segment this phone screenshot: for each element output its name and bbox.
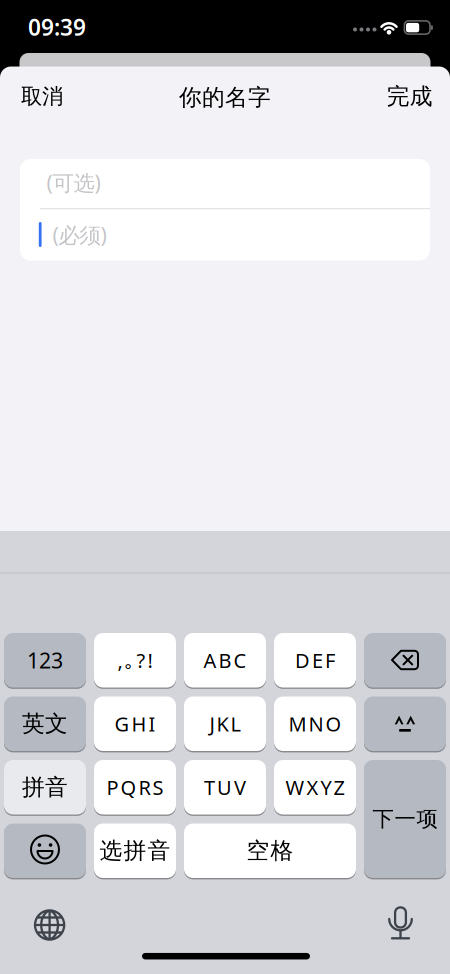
button[interactable]: 完成 [387,83,433,110]
staticText: J K L [209,710,240,737]
staticText: 下 一 项 [372,806,437,832]
button[interactable]: Emoji [4,823,86,878]
staticText: 选 拼 音 [99,837,170,865]
staticText: D E F [295,647,335,674]
staticText: G H I [114,710,155,737]
button[interactable]: A B C [184,633,266,687]
staticText: M N O [288,710,341,737]
button[interactable]: 空 格 [184,823,356,878]
button[interactable]: G H I [94,696,176,751]
button[interactable]: Dictation [378,901,422,945]
staticText: , ｡ ? ! [117,647,152,674]
staticText: 英文 [22,710,68,738]
button[interactable]: , ｡ ? ! [94,633,176,687]
button[interactable]: 拼音 [4,760,86,814]
button[interactable]: Delete [364,633,446,687]
button[interactable]: 取消 [21,83,63,110]
button[interactable]: J K L [184,696,266,751]
button[interactable]: P Q R S [94,760,176,814]
staticText: P Q R S [106,774,163,801]
button[interactable]: Next keyboard [28,903,72,947]
staticText: 123 [27,646,63,674]
staticText: (必须) [52,221,106,249]
button[interactable]: Emoticon [364,696,446,751]
staticText: 空 格 [246,837,293,865]
button[interactable]: W X Y Z [274,760,356,814]
staticText: A B C [203,647,246,674]
button[interactable]: 123 [4,633,86,687]
button[interactable]: M N O [274,696,356,751]
staticText: (可选) [46,168,100,197]
button[interactable]: 英文 [4,696,86,751]
staticText: 09:39 [28,12,86,42]
button[interactable]: D E F [274,633,356,687]
staticText: 拼音 [22,773,68,801]
staticText: W X Y Z [285,774,344,801]
staticText: 完成 [387,83,433,110]
button[interactable]: 下 一 项 [364,760,446,878]
staticText: 你的名字 [179,84,271,111]
staticText: 取消 [21,83,63,110]
button[interactable]: (可选) [46,158,426,206]
button[interactable]: (必须) [52,211,426,259]
button[interactable]: 选 拼 音 [94,823,176,878]
staticText: T U V [204,774,246,801]
button[interactable]: T U V [184,760,266,814]
